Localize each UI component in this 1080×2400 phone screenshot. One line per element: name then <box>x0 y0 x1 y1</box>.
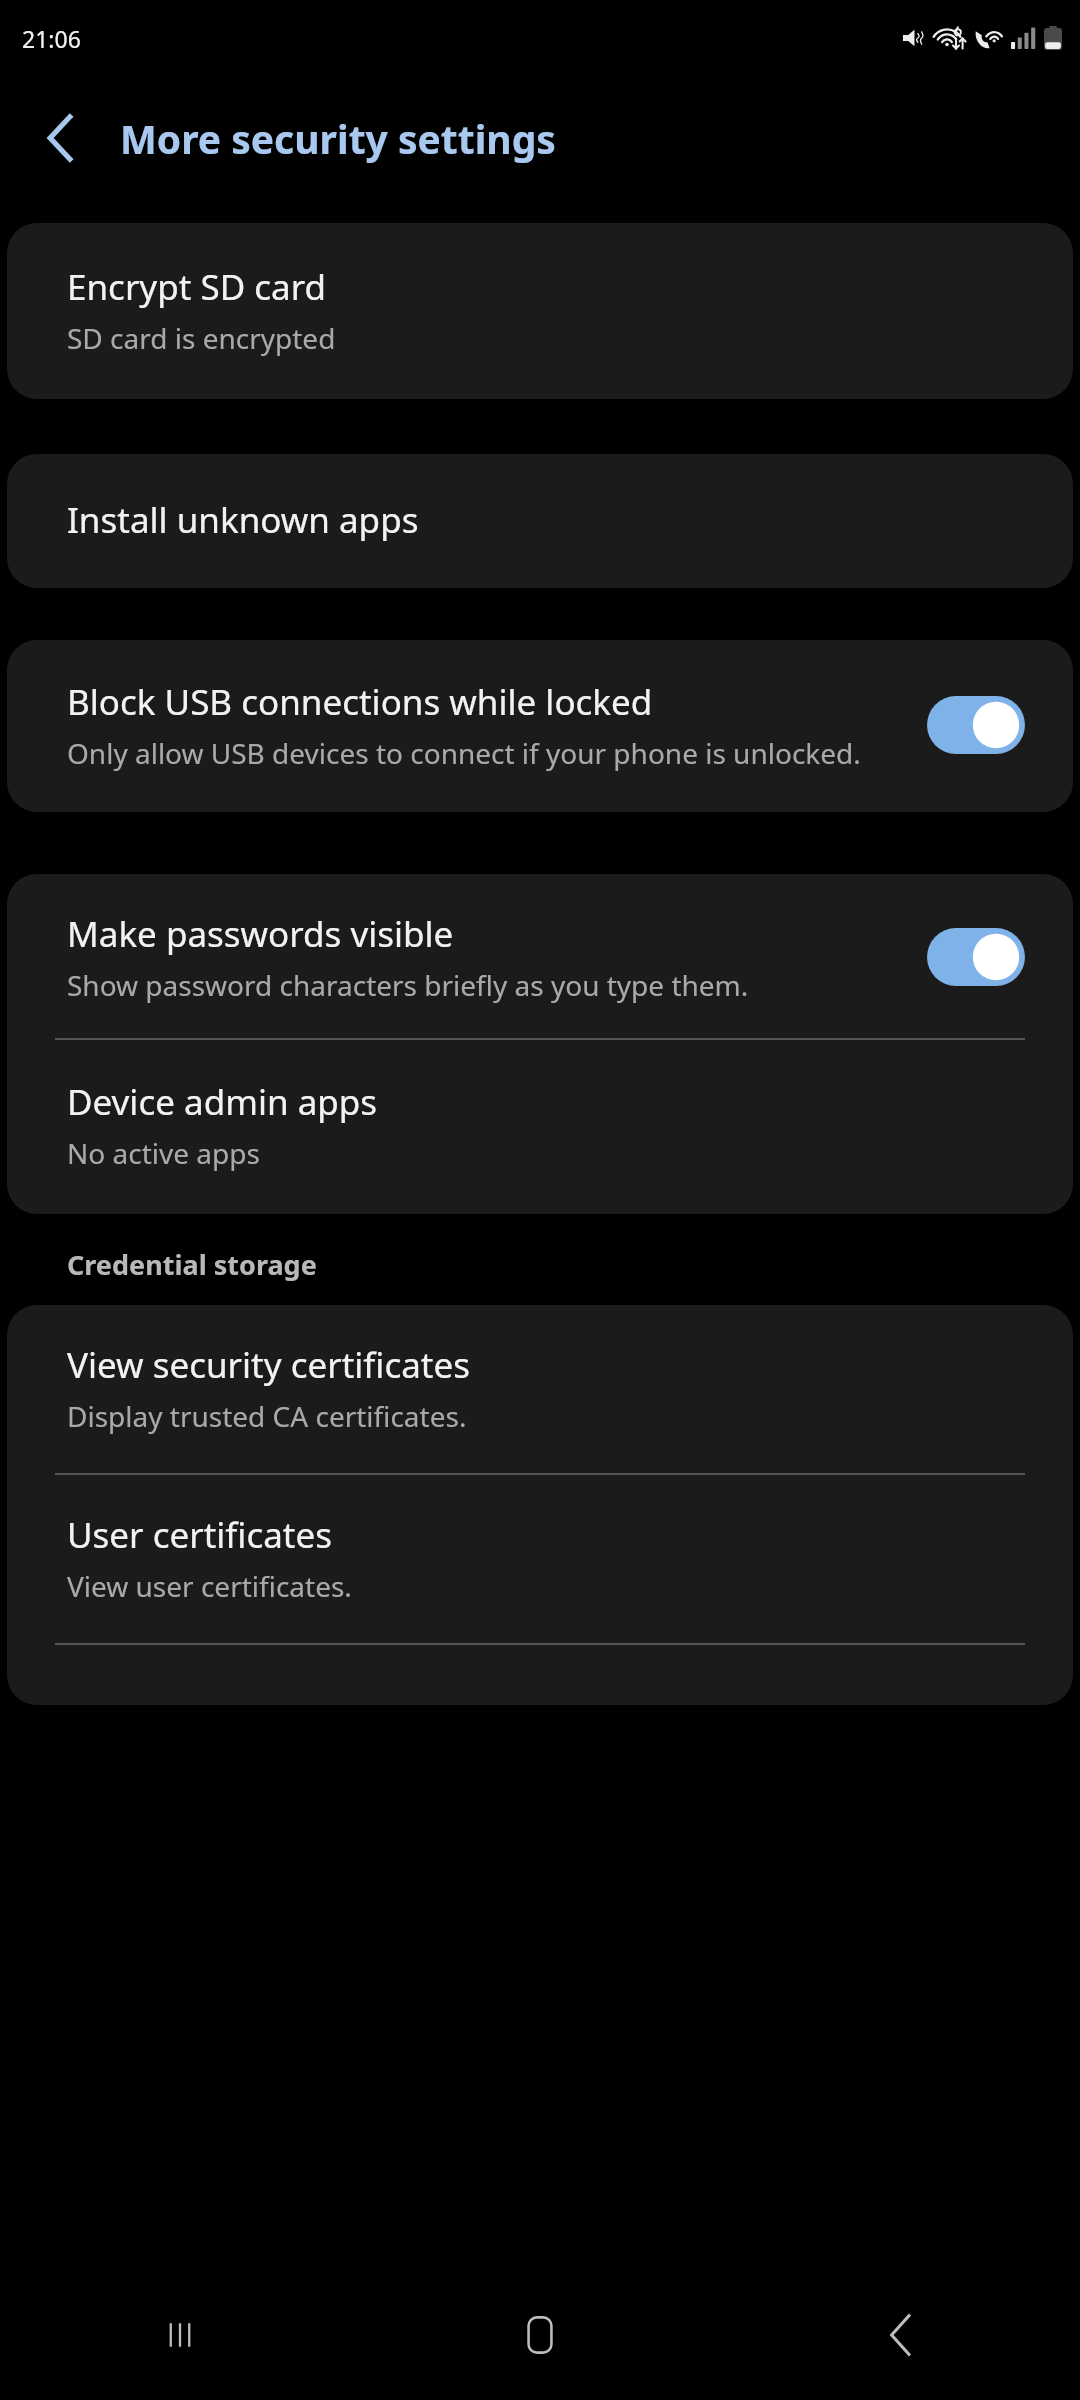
staticText: No active apps <box>67 1134 260 1172</box>
staticText: View user certificates. <box>67 1567 352 1605</box>
button[interactable]: Home <box>360 2270 720 2400</box>
button[interactable]: Make passwords visible <box>7 874 1073 1038</box>
button[interactable]: Device admin apps <box>7 1040 1073 1214</box>
button[interactable]: Toggle <box>927 696 1025 754</box>
staticText: 21:06 <box>22 23 81 54</box>
staticText: Install unknown apps <box>67 496 419 544</box>
button[interactable]: Install unknown apps <box>7 454 1073 588</box>
button[interactable]: Block USB connections while locked <box>7 640 1073 812</box>
staticText: SD card is encrypted <box>67 319 336 357</box>
button[interactable]: Back <box>720 2270 1080 2400</box>
button[interactable]: Back <box>0 76 120 200</box>
staticText: More security settings <box>120 112 556 165</box>
button[interactable]: Recent apps <box>0 2270 360 2400</box>
staticText: View security certificates <box>67 1341 470 1389</box>
staticText: Credential storage <box>67 1246 317 1283</box>
staticText: Only allow USB devices to connect if you… <box>67 734 861 772</box>
staticText: User certificates <box>67 1511 332 1559</box>
staticText: Make passwords visible <box>67 910 454 958</box>
staticText: Encrypt SD card <box>67 263 327 311</box>
staticText: Display trusted CA certificates. <box>67 1397 467 1435</box>
button[interactable]: Toggle <box>927 928 1025 986</box>
button[interactable]: User certificates <box>7 1475 1073 1643</box>
staticText: Device admin apps <box>67 1078 378 1126</box>
button[interactable]: Encrypt SD card <box>7 223 1073 399</box>
staticText: Show password characters briefly as you … <box>67 966 749 1004</box>
staticText: Block USB connections while locked <box>67 678 653 726</box>
button[interactable]: View security certificates <box>7 1305 1073 1473</box>
